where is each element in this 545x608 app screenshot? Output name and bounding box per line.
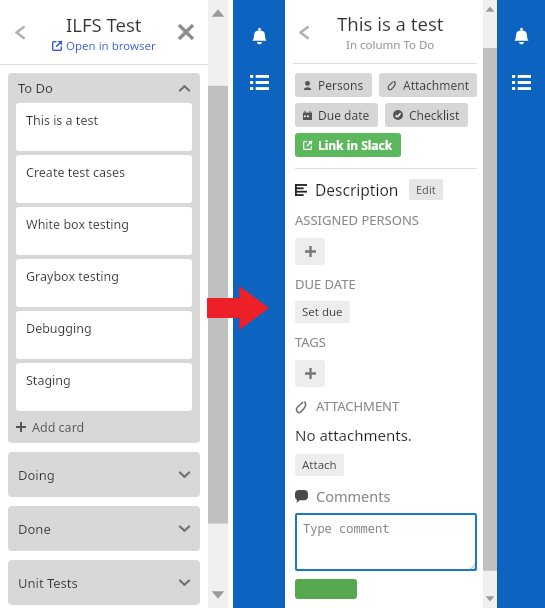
staticText: Checklist	[409, 107, 460, 123]
button[interactable]: Staging	[16, 363, 192, 411]
button[interactable]: Debugging	[16, 311, 192, 359]
staticText: Comments	[316, 486, 391, 506]
staticText: Unit Tests	[18, 574, 78, 592]
button[interactable]: This is a test	[16, 103, 192, 151]
button[interactable]: Back	[2, 14, 38, 50]
button[interactable]: Checklist	[385, 103, 468, 127]
button[interactable]: Attach	[295, 454, 344, 476]
staticText: Attachment	[403, 77, 469, 93]
staticText: This is a test	[337, 11, 444, 36]
staticText: Edit	[416, 182, 436, 197]
staticText: Open in browser	[66, 38, 156, 54]
staticText: Persons	[318, 77, 364, 93]
button[interactable]: Add	[295, 360, 325, 387]
staticText: Description	[315, 179, 399, 200]
button[interactable]: Notifications	[243, 20, 275, 52]
button[interactable]: Create test cases	[16, 155, 192, 203]
staticText: ASSIGNED PERSONS	[295, 211, 419, 229]
staticText: No attachments.	[295, 425, 412, 445]
staticText: To Do	[18, 79, 53, 97]
staticText: Due date	[318, 107, 370, 123]
button[interactable]: Boards	[505, 66, 537, 98]
staticText: In column To Do	[346, 37, 435, 53]
staticText: Set due	[302, 304, 343, 320]
staticText: Attach	[302, 457, 337, 473]
button[interactable]: Add	[295, 238, 325, 265]
staticText: White box testing	[26, 216, 129, 233]
button[interactable]: Due date	[295, 103, 378, 127]
button[interactable]: Graybox testing	[16, 259, 192, 307]
button[interactable]: Add card	[16, 415, 192, 439]
staticText: ATTACHMENT	[316, 397, 400, 415]
button[interactable]: Attachment	[379, 73, 477, 97]
staticText: This is a test	[26, 112, 98, 129]
staticText: Staging	[26, 372, 71, 389]
staticText: Create test cases	[26, 164, 126, 181]
button[interactable]: To Do	[8, 73, 200, 103]
button[interactable]: Open in browser	[52, 38, 156, 54]
button[interactable]: Back	[287, 15, 321, 49]
staticText: Add card	[32, 419, 85, 436]
staticText: Doing	[18, 466, 55, 484]
staticText: DUE DATE	[295, 275, 356, 293]
staticText: Done	[18, 520, 51, 538]
button[interactable]: Close	[168, 14, 204, 50]
staticText: Type comment	[303, 520, 390, 536]
staticText: TAGS	[295, 333, 326, 351]
button[interactable]: Edit	[409, 179, 443, 200]
button[interactable]: White box testing	[16, 207, 192, 255]
button[interactable]: Done	[8, 506, 200, 551]
staticText: ILFS Test	[66, 12, 142, 37]
button[interactable]: Persons	[295, 73, 372, 97]
button[interactable]: Unit Tests	[8, 560, 200, 605]
button[interactable]: Boards	[243, 66, 275, 98]
button[interactable]: Doing	[8, 452, 200, 497]
button[interactable]: Type comment	[295, 513, 477, 571]
button[interactable]: Link in Slack	[295, 133, 401, 157]
staticText: Debugging	[26, 320, 92, 337]
button[interactable]	[295, 579, 357, 599]
staticText: Link in Slack	[318, 137, 393, 153]
button[interactable]: Notifications	[505, 20, 537, 52]
button[interactable]: Set due	[295, 301, 350, 323]
staticText: Graybox testing	[26, 268, 119, 285]
